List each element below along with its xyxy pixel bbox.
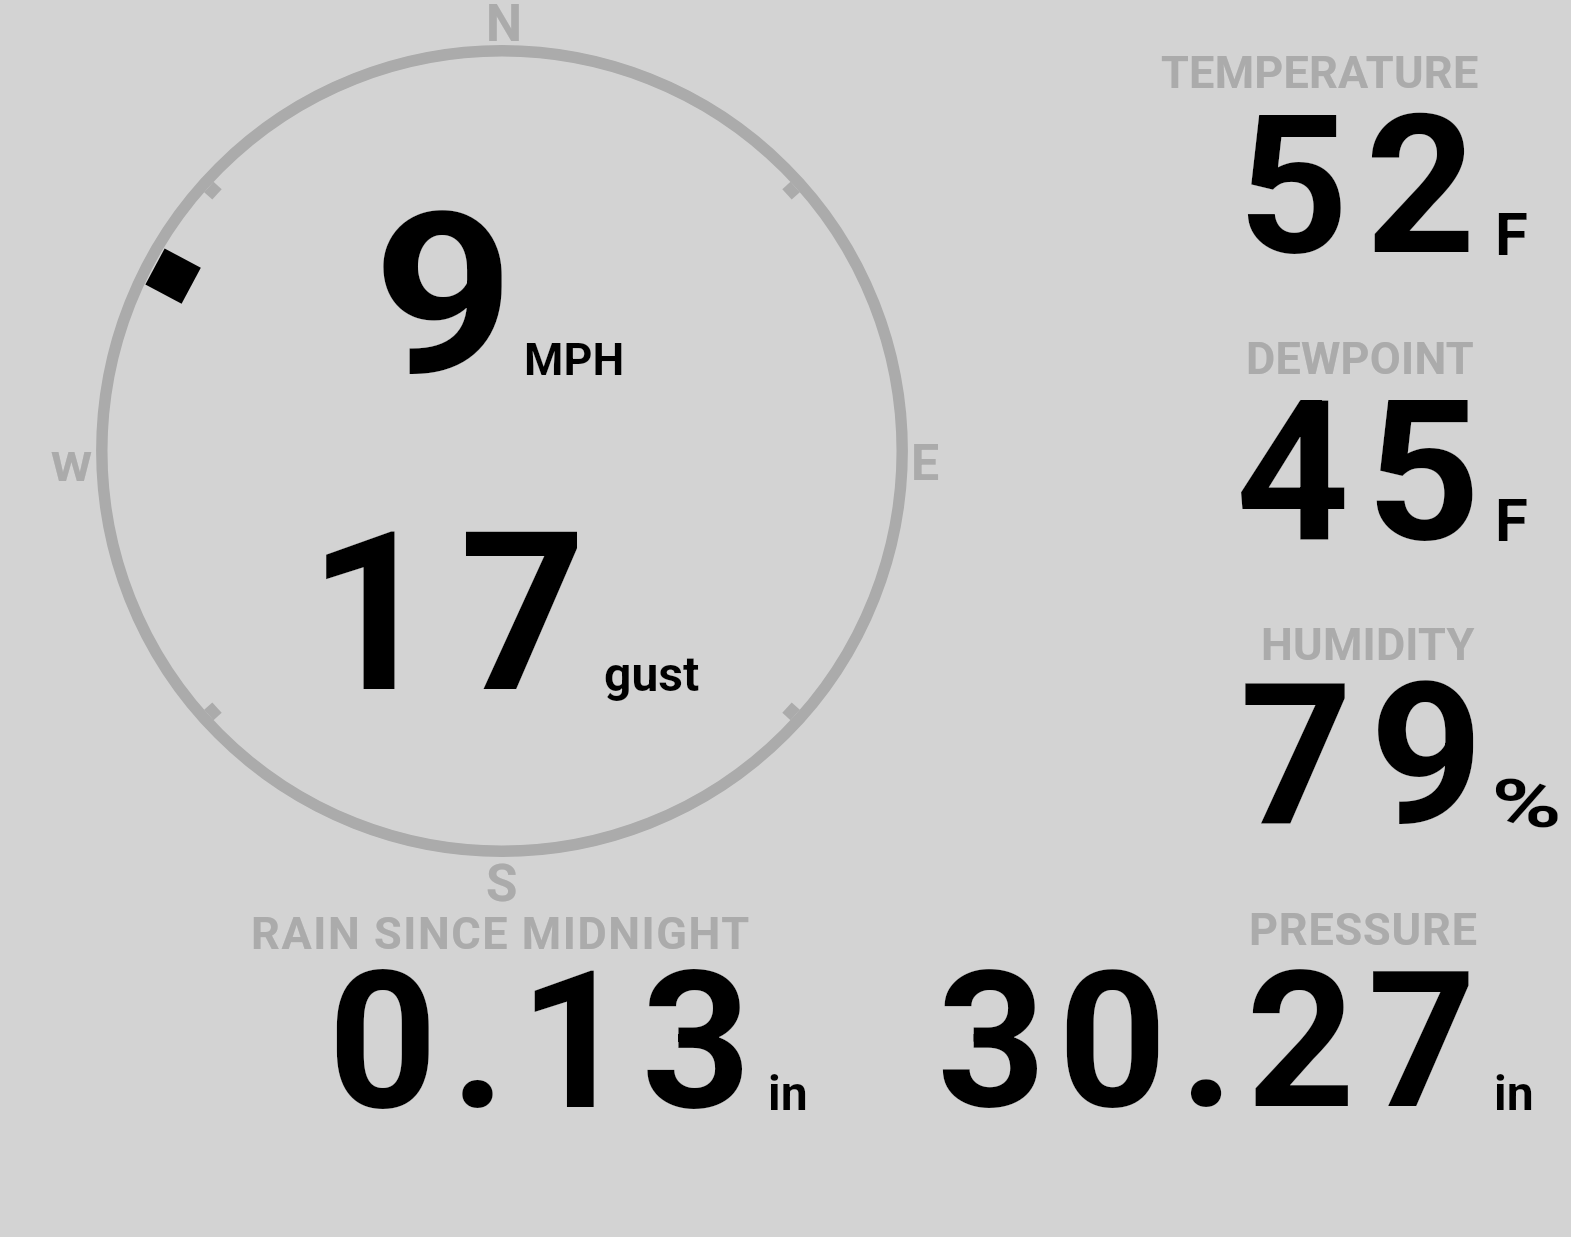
staticText: PRESSURE (1249, 903, 1478, 956)
staticText: E (911, 434, 940, 493)
staticText: DEWPOINT (1246, 332, 1474, 385)
staticText: HUMIDITY (1261, 618, 1475, 671)
button[interactable]: Dewpoint 45 degrees Fahrenheit (1100, 316, 1571, 566)
staticText: S (486, 854, 518, 914)
button[interactable]: Temperature 52 degrees Fahrenheit (1100, 30, 1571, 280)
staticText: RAIN SINCE MIDNIGHT (251, 907, 751, 960)
staticText: % (1491, 766, 1562, 843)
button[interactable]: Pressure 30.27 inches (900, 896, 1571, 1136)
staticText: 45 (1236, 359, 1498, 586)
staticText: 17 (308, 484, 612, 743)
staticText: W (51, 444, 92, 491)
staticText: in (1494, 1065, 1534, 1121)
staticText: 0.13 (328, 930, 765, 1154)
staticText: MPH (524, 333, 625, 386)
staticText: in (768, 1065, 808, 1121)
button[interactable]: Wind speed and direction (60, 0, 960, 905)
staticText: TEMPERATURE (1161, 46, 1479, 99)
staticText: 52 (1238, 73, 1493, 299)
staticText: F (1495, 199, 1528, 269)
button[interactable]: Humidity 79 percent (1100, 602, 1571, 852)
button[interactable]: Rain since midnight 0.13 inches (240, 896, 830, 1136)
staticText: 30.27 (937, 930, 1489, 1153)
staticText: N (486, 0, 522, 54)
staticText: F (1495, 485, 1528, 555)
staticText: 79 (1239, 641, 1501, 871)
staticText: 9 (373, 164, 536, 427)
staticText: gust (604, 646, 700, 702)
